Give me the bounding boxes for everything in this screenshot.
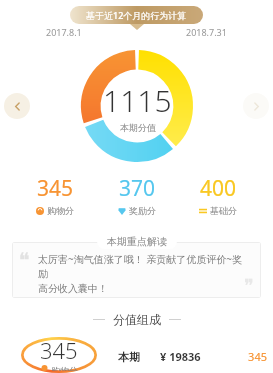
staticText: 345 [40, 335, 78, 365]
staticText: 基础分 [210, 205, 237, 216]
button[interactable]: 太厉害~淘气值涨了哦！ 亲贡献了优质评价~奖励 高分收入囊中！ [12, 242, 261, 298]
button[interactable]: Next period [243, 93, 269, 119]
button[interactable]: Previous period [4, 93, 30, 119]
button[interactable]: 345 [28, 172, 82, 218]
staticText: 400 [200, 174, 237, 203]
staticText: 购物分 [51, 365, 78, 371]
staticText: 370 [119, 174, 156, 203]
staticText: 太厉害~淘气值涨了哦！ 亲贡献了优质评价~奖励 高分收入囊中！ [38, 252, 245, 295]
staticText: 345 [231, 349, 267, 364]
staticText: 2017.8.1 [46, 26, 82, 38]
button[interactable]: 370 [110, 172, 164, 218]
staticText: 本期重点解读 [107, 235, 167, 248]
staticText: 本期分值 [120, 122, 156, 133]
staticText: 1115 [103, 80, 172, 121]
staticText: ❝ [19, 248, 30, 271]
staticText: 分值组成 [113, 312, 161, 327]
staticText: ❞ [244, 275, 254, 296]
button[interactable]: 400 [191, 172, 245, 218]
staticText: 奖励分 [129, 205, 156, 216]
staticText: ¥ 19836 [160, 349, 231, 364]
staticText: 345 [37, 174, 74, 203]
staticText: 购物分 [47, 205, 74, 216]
button[interactable]: 基于近12个月的行为计算 [70, 6, 203, 24]
staticText: 基于近12个月的行为计算 [86, 9, 187, 21]
staticText: 2018.7.31 [186, 26, 227, 38]
staticText: 本期 [118, 350, 160, 364]
